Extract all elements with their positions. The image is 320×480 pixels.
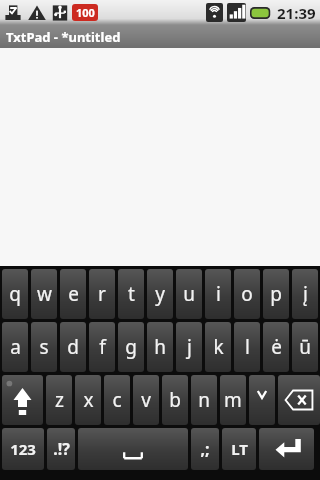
staticText: į <box>303 281 308 307</box>
button[interactable]: į <box>292 269 318 319</box>
staticText: e <box>68 281 79 307</box>
staticText: k <box>213 334 224 360</box>
button[interactable]: v <box>133 375 159 425</box>
staticText: j <box>187 334 192 360</box>
staticText: 100 <box>76 5 95 20</box>
button[interactable]: q <box>2 269 28 319</box>
staticText: h <box>154 334 166 360</box>
staticText: m <box>224 387 242 413</box>
button[interactable]: Space <box>78 428 188 470</box>
staticText: i <box>216 281 221 307</box>
staticText: y <box>155 281 165 307</box>
staticText: q <box>9 281 21 307</box>
button[interactable]: x <box>75 375 101 425</box>
button[interactable]: o <box>234 269 260 319</box>
button[interactable]: ,; <box>191 428 219 470</box>
button[interactable]: s <box>31 322 57 372</box>
staticText: ū <box>299 334 311 360</box>
button[interactable]: .!? <box>47 428 75 470</box>
button[interactable]: z <box>46 375 72 425</box>
button[interactable]: More symbols <box>249 375 275 425</box>
staticText: LT <box>231 439 248 459</box>
staticText: TxtPad - *untitled <box>6 28 121 46</box>
button[interactable]: Enter <box>259 428 314 470</box>
button[interactable]: b <box>162 375 188 425</box>
button[interactable]: a <box>2 322 28 372</box>
button[interactable]: m <box>220 375 246 425</box>
button[interactable]: e <box>60 269 86 319</box>
button[interactable]: i <box>205 269 231 319</box>
staticText: f <box>99 334 106 360</box>
staticText: w <box>37 281 52 307</box>
button[interactable]: ū <box>292 322 318 372</box>
button[interactable]: j <box>176 322 202 372</box>
staticText: r <box>98 281 106 307</box>
staticText: d <box>67 334 79 360</box>
button[interactable]: k <box>205 322 231 372</box>
staticText: ,; <box>200 438 210 460</box>
staticText: s <box>39 334 49 360</box>
button[interactable]: l <box>234 322 260 372</box>
button[interactable]: Backspace <box>278 375 320 425</box>
button[interactable]: LT <box>222 428 256 470</box>
button[interactable]: t <box>118 269 144 319</box>
button[interactable]: u <box>176 269 202 319</box>
button[interactable]: f <box>89 322 115 372</box>
button[interactable]: n <box>191 375 217 425</box>
staticText: a <box>10 334 21 360</box>
button[interactable]: d <box>60 322 86 372</box>
button[interactable]: c <box>104 375 130 425</box>
staticText: u <box>183 281 195 307</box>
button[interactable]: Shift <box>2 375 43 425</box>
staticText: g <box>125 334 137 360</box>
staticText: v <box>141 387 151 413</box>
button[interactable]: w <box>31 269 57 319</box>
staticText: p <box>270 281 282 307</box>
staticText: 123 <box>10 439 36 459</box>
button[interactable]: r <box>89 269 115 319</box>
staticText: o <box>241 281 253 307</box>
button[interactable]: g <box>118 322 144 372</box>
staticText: c <box>112 387 122 413</box>
staticText: z <box>55 387 64 413</box>
staticText: l <box>245 334 250 360</box>
button[interactable]: 123 <box>2 428 44 470</box>
staticText: 21:39 <box>277 3 316 23</box>
staticText: n <box>198 387 210 413</box>
staticText: ė <box>271 334 282 360</box>
staticText: .!? <box>53 438 70 460</box>
staticText: x <box>83 387 94 413</box>
button[interactable]: y <box>147 269 173 319</box>
staticText: b <box>169 387 181 413</box>
button[interactable]: ė <box>263 322 289 372</box>
staticText: t <box>128 281 135 307</box>
button[interactable]: h <box>147 322 173 372</box>
button[interactable]: p <box>263 269 289 319</box>
